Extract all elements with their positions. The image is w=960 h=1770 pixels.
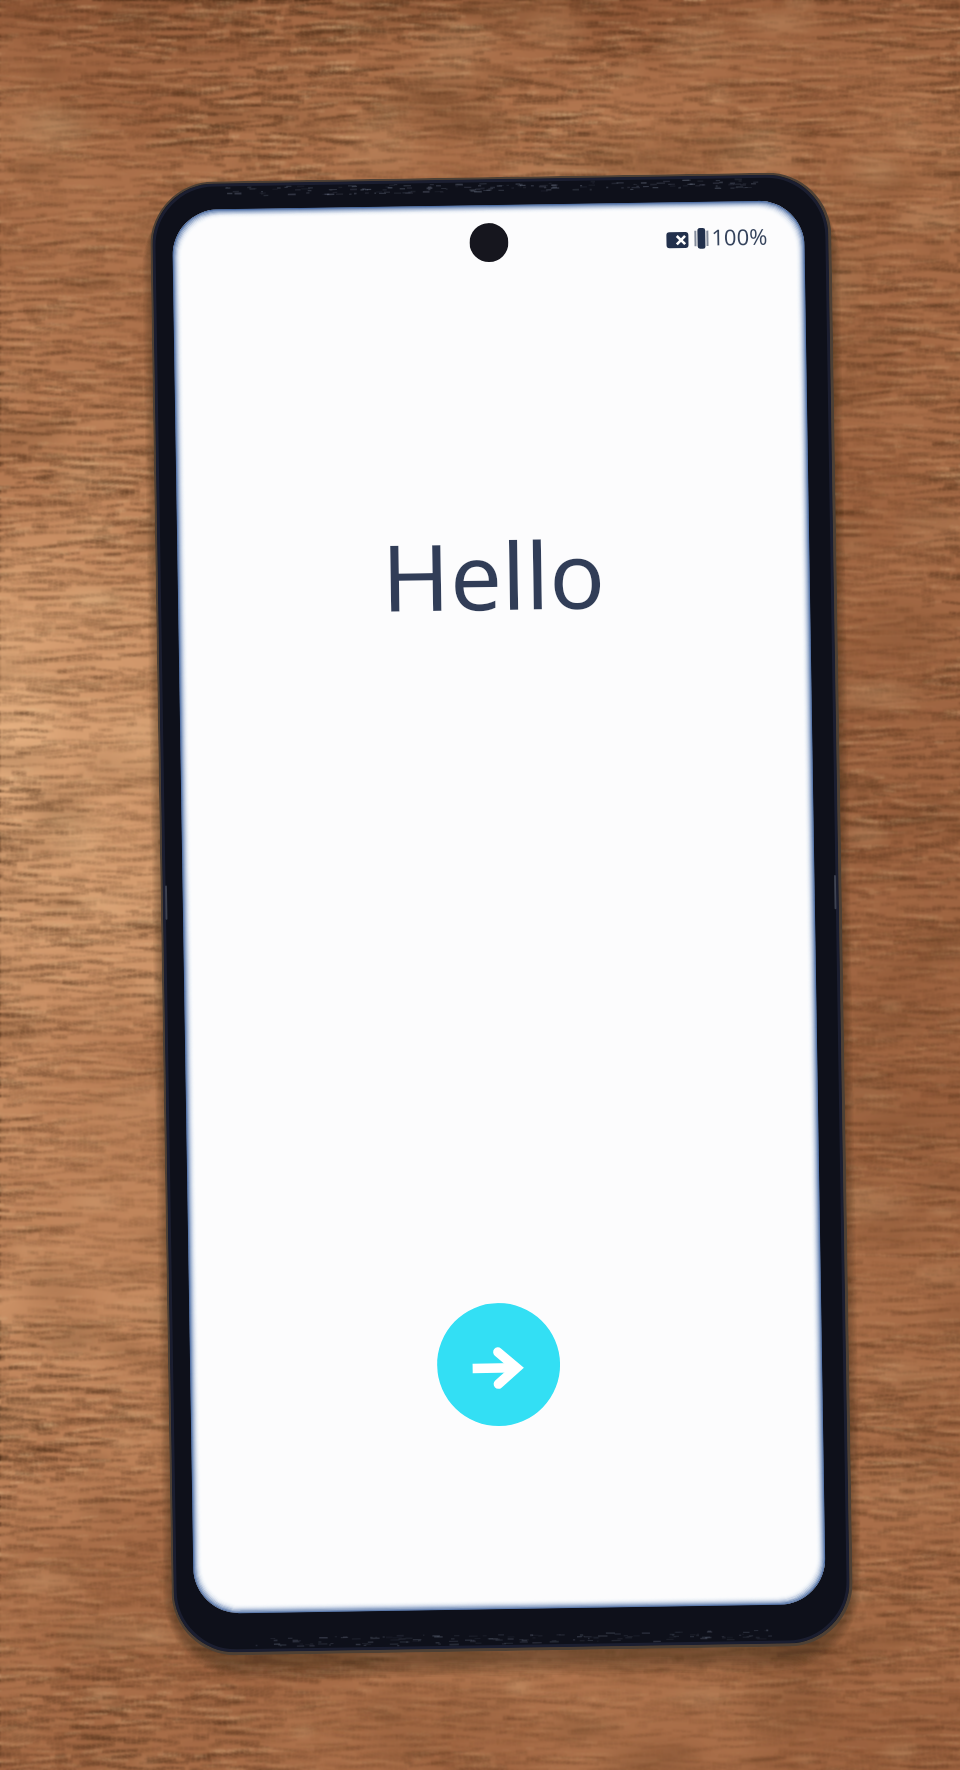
button[interactable]: Next — [436, 1302, 561, 1427]
staticText: 100% — [711, 221, 769, 252]
staticText: Hello — [381, 510, 607, 639]
